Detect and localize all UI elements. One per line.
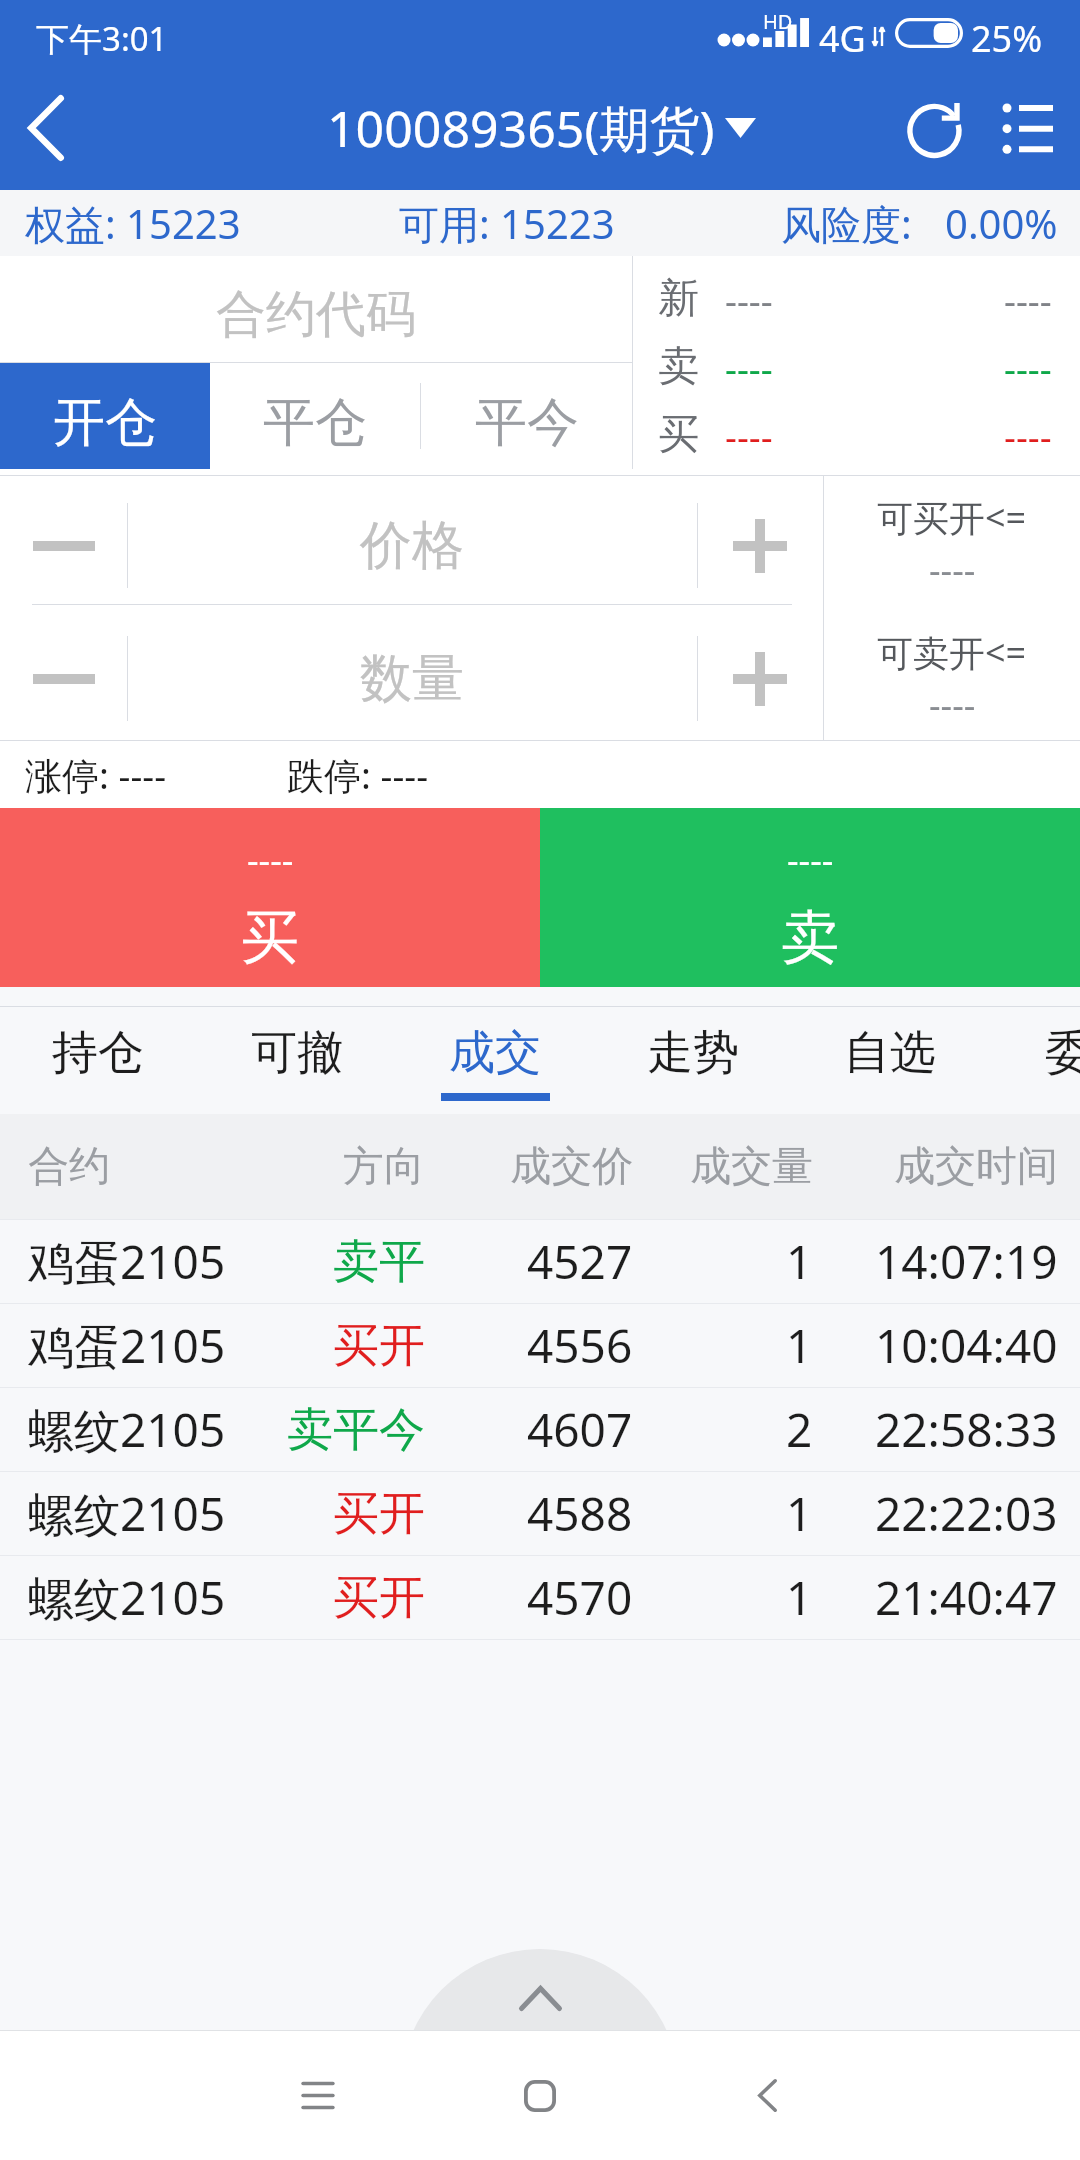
button[interactable]: Menu bbox=[976, 69, 1080, 183]
staticText: 卖 bbox=[781, 901, 839, 974]
staticText: 合约代码 bbox=[216, 283, 416, 346]
staticText: 4556 bbox=[527, 1314, 633, 1377]
staticText: 方向 bbox=[343, 1141, 425, 1193]
button[interactable]: Back bbox=[0, 71, 92, 185]
button[interactable]: 鸡蛋2105 bbox=[0, 1220, 1080, 1303]
staticText: 可撤 bbox=[251, 1024, 343, 1082]
staticText: 数量 bbox=[360, 646, 464, 712]
staticText: 价格 bbox=[360, 513, 464, 579]
staticText: ---- bbox=[725, 274, 773, 324]
staticText: HD bbox=[763, 8, 793, 35]
staticText: ---- bbox=[929, 680, 976, 724]
button[interactable]: Increase 价格 bbox=[697, 495, 823, 596]
staticText: 1 bbox=[786, 1314, 813, 1377]
staticText: 鸡蛋2105 bbox=[28, 1230, 226, 1293]
staticText: 卖平 bbox=[333, 1233, 425, 1291]
staticText: 委 bbox=[1045, 1024, 1080, 1082]
button[interactable]: 平仓 bbox=[210, 363, 420, 469]
button[interactable]: 持仓 bbox=[0, 1007, 197, 1114]
staticText: ---- bbox=[1004, 410, 1052, 460]
staticText: 4527 bbox=[527, 1230, 633, 1293]
staticText: 4588 bbox=[527, 1482, 633, 1545]
button[interactable]: Home bbox=[484, 2031, 596, 2160]
staticText: 下午3:01 bbox=[36, 16, 168, 61]
button[interactable]: 可撤 bbox=[198, 1007, 396, 1114]
button[interactable]: 鸡蛋2105 bbox=[0, 1304, 1080, 1387]
button[interactable]: 螺纹2105 bbox=[0, 1556, 1080, 1639]
staticText: 平仓 bbox=[263, 390, 367, 456]
staticText: 持仓 bbox=[52, 1024, 144, 1082]
button[interactable]: Increase 数量 bbox=[697, 628, 823, 729]
staticText: 螺纹2105 bbox=[28, 1566, 226, 1629]
button[interactable]: 开仓 bbox=[0, 363, 210, 469]
staticText: 1 bbox=[786, 1482, 813, 1545]
button[interactable]: 合约代码 bbox=[0, 256, 632, 362]
button[interactable]: ---- bbox=[0, 808, 540, 987]
button[interactable]: 螺纹2105 bbox=[0, 1388, 1080, 1471]
staticText: 买开 bbox=[333, 1317, 425, 1375]
button[interactable]: 成交 bbox=[396, 1007, 594, 1114]
staticText: 买 bbox=[658, 409, 699, 461]
staticText: 4607 bbox=[527, 1398, 633, 1461]
button[interactable]: 自选 bbox=[791, 1007, 989, 1114]
staticText: ---- bbox=[247, 835, 294, 884]
button[interactable]: 价格 bbox=[127, 495, 696, 596]
button[interactable]: Expand panel bbox=[413, 1949, 667, 2030]
staticText: 21:40:47 bbox=[875, 1566, 1058, 1629]
staticText: 1 bbox=[786, 1230, 813, 1293]
button[interactable]: 螺纹2105 bbox=[0, 1472, 1080, 1555]
staticText: 4570 bbox=[527, 1566, 633, 1629]
staticText: 开仓 bbox=[53, 390, 157, 456]
staticText: 可卖开<= bbox=[877, 628, 1027, 672]
staticText: 4G bbox=[819, 14, 866, 63]
staticText: 成交 bbox=[449, 1024, 541, 1082]
staticText: 跌停: ---- bbox=[287, 749, 429, 800]
button[interactable]: 平今 bbox=[421, 363, 632, 469]
staticText: 鸡蛋2105 bbox=[28, 1314, 226, 1377]
staticText: 涨停: ---- bbox=[25, 749, 167, 800]
staticText: 22:58:33 bbox=[875, 1398, 1058, 1461]
staticText: 卖平今 bbox=[287, 1401, 425, 1459]
button[interactable]: 走势 bbox=[594, 1007, 792, 1114]
staticText: 买开 bbox=[333, 1485, 425, 1543]
staticText: 螺纹2105 bbox=[28, 1482, 226, 1545]
staticText: 权益: 15223 bbox=[25, 196, 241, 251]
staticText: 22:22:03 bbox=[875, 1482, 1058, 1545]
staticText: 1 bbox=[786, 1566, 813, 1629]
staticText: 2 bbox=[786, 1398, 813, 1461]
staticText: ---- bbox=[1004, 342, 1052, 392]
staticText: 可买开<= bbox=[877, 493, 1027, 537]
staticText: 风险度: bbox=[781, 196, 912, 251]
button[interactable]: ---- bbox=[540, 808, 1080, 987]
staticText: 新 bbox=[658, 273, 699, 325]
staticText: 可用: 15223 bbox=[399, 196, 615, 251]
staticText: ---- bbox=[725, 410, 773, 460]
staticText: 成交量 bbox=[690, 1141, 813, 1193]
staticText: 10:04:40 bbox=[875, 1314, 1058, 1377]
button[interactable]: Refresh bbox=[885, 71, 989, 185]
staticText: 买开 bbox=[333, 1569, 425, 1627]
button[interactable]: 100089365(期货) bbox=[327, 94, 756, 162]
staticText: 成交价 bbox=[510, 1141, 633, 1193]
staticText: 25% bbox=[971, 14, 1043, 63]
staticText: 卖 bbox=[658, 341, 699, 393]
staticText: ---- bbox=[787, 835, 834, 884]
button[interactable]: Back bbox=[711, 2031, 823, 2160]
button[interactable]: 委 bbox=[969, 1007, 1080, 1114]
staticText: 走势 bbox=[647, 1024, 739, 1082]
button[interactable]: 数量 bbox=[127, 628, 696, 729]
staticText: 合约 bbox=[28, 1141, 110, 1193]
staticText: 100089365(期货) bbox=[327, 94, 715, 162]
staticText: 平今 bbox=[475, 390, 579, 456]
staticText: 螺纹2105 bbox=[28, 1398, 226, 1461]
staticText: 14:07:19 bbox=[875, 1230, 1058, 1293]
button[interactable]: Recent apps bbox=[262, 2031, 374, 2160]
staticText: 买 bbox=[241, 901, 299, 974]
staticText: 0.00% bbox=[945, 196, 1058, 250]
button[interactable]: Decrease 价格 bbox=[0, 495, 127, 596]
staticText: 成交时间 bbox=[894, 1141, 1058, 1193]
staticText: ---- bbox=[1004, 274, 1052, 324]
button[interactable]: Decrease 数量 bbox=[0, 628, 127, 729]
staticText: ---- bbox=[725, 342, 773, 392]
staticText: 自选 bbox=[844, 1024, 936, 1082]
